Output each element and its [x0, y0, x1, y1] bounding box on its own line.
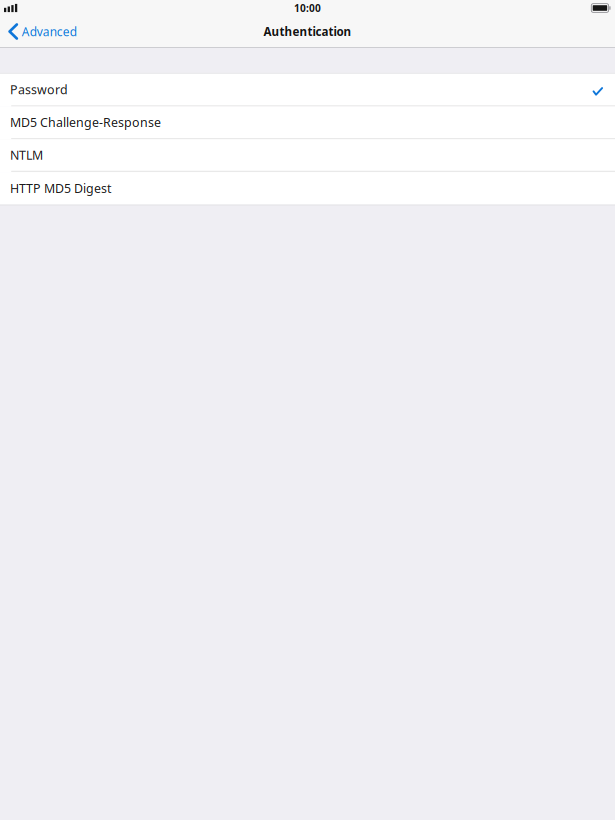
staticText: 10:00	[294, 1, 321, 15]
button[interactable]: Password	[0, 74, 615, 107]
staticText: HTTP MD5 Digest	[10, 180, 111, 197]
staticText: Authentication	[263, 24, 351, 39]
staticText: NTLM	[10, 147, 43, 163]
staticText: MD5 Challenge-Response	[10, 114, 161, 131]
staticText: Advanced	[22, 23, 77, 40]
button[interactable]: HTTP MD5 Digest	[0, 172, 615, 205]
staticText: Password	[10, 81, 68, 98]
button[interactable]: MD5 Challenge-Response	[0, 107, 615, 139]
button[interactable]: NTLM	[0, 139, 615, 172]
button[interactable]: Advanced	[0, 20, 87, 43]
